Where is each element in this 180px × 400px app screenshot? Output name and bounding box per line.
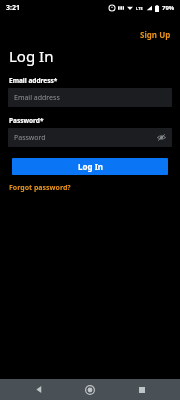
button[interactable]: Recent apps bbox=[129, 379, 155, 400]
staticText: Log In bbox=[78, 161, 103, 172]
staticText: LTE bbox=[136, 6, 143, 11]
button[interactable]: Show password bbox=[156, 132, 167, 143]
button[interactable]: Log In bbox=[12, 158, 168, 175]
staticText: Email address* bbox=[9, 76, 58, 85]
staticText: 79% bbox=[162, 4, 175, 12]
staticText: Password bbox=[14, 133, 46, 143]
button[interactable]: Home bbox=[77, 379, 103, 400]
staticText: Email address bbox=[14, 93, 60, 103]
button[interactable]: Back bbox=[26, 379, 52, 400]
button[interactable]: Sign Up bbox=[131, 27, 180, 42]
staticText: Password* bbox=[9, 116, 44, 125]
button[interactable]: Forgot password? bbox=[9, 183, 71, 193]
button[interactable]: Email address bbox=[8, 88, 172, 107]
staticText: Log In bbox=[9, 46, 54, 66]
staticText: 3:21 bbox=[6, 3, 20, 13]
staticText: Sign Up bbox=[140, 29, 171, 40]
button[interactable]: Password bbox=[8, 128, 172, 147]
